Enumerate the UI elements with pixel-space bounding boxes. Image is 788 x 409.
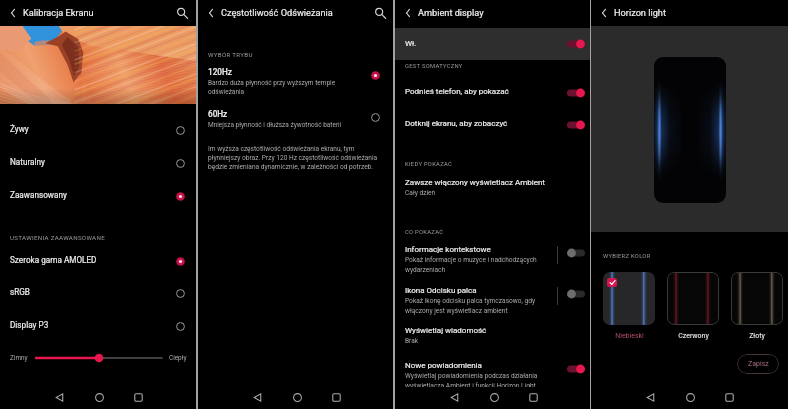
button[interactable]: Wyświetlaj wiadomość [395, 326, 590, 348]
staticText: Bardzo duża płynność przy wyższym tempie… [208, 79, 338, 96]
staticText: Szeroka gama AMOLED [10, 255, 97, 265]
staticText: GEST SOMATYCZNY [405, 63, 463, 70]
staticText: Podnieś telefon, aby pokazać [405, 87, 509, 96]
staticText: Czerwony [678, 332, 709, 340]
button[interactable]: 60Hz [198, 106, 393, 134]
staticText: 60Hz [208, 109, 228, 119]
staticText: Zapisz [748, 360, 769, 368]
button[interactable]: Back [7, 7, 19, 19]
staticText: Informacje kontekstowe [405, 245, 491, 254]
button[interactable]: Back [598, 7, 610, 19]
button[interactable]: Home [487, 390, 501, 404]
staticText: Pokaż informacje o muzyce i nadchodzącyc… [405, 256, 544, 274]
staticText: Cały dzień [405, 189, 436, 197]
staticText: Wyświetlaj wiadomość [405, 326, 487, 335]
button[interactable]: Back [52, 390, 66, 404]
staticText: WYBIERZ KOLOR [603, 253, 651, 260]
staticText: Nowe powiadomienia [405, 361, 482, 370]
button[interactable]: Niebieski [603, 272, 655, 344]
button[interactable]: Recents [722, 390, 736, 404]
button[interactable]: Czerwony [667, 272, 719, 344]
staticText: USTAWIENIA ZAAWANSOWANE [10, 234, 105, 241]
button[interactable]: 120Hz [198, 64, 393, 102]
staticText: Zawsze włączony wyświetlacz Ambient [405, 178, 545, 187]
staticText: Częstotliwość Odświeżania [221, 7, 333, 18]
staticText: Ikona Odcisku palca [405, 286, 477, 295]
button[interactable]: Home [683, 390, 697, 404]
button[interactable]: Back [643, 390, 657, 404]
button[interactable]: Podnieś telefon, aby pokazać [395, 87, 590, 107]
button[interactable]: Wł. [395, 28, 590, 60]
staticText: 120Hz [208, 67, 232, 77]
staticText: Brak [405, 337, 419, 345]
staticText: Wyświetlaj powiadomienia podczas działan… [405, 372, 544, 390]
button[interactable]: Recents [329, 390, 343, 404]
button[interactable]: Dotknij ekranu, aby zobaczyć [395, 119, 590, 139]
staticText: CO POKAZAĆ [405, 229, 444, 236]
button[interactable]: Back [205, 7, 217, 19]
button[interactable]: Home [92, 390, 106, 404]
staticText: WYBÓR TRYBU [208, 51, 253, 58]
staticText: Wł. [405, 39, 417, 48]
staticText: Pokaż ikonę odcisku palca tymczasowo, gd… [405, 297, 544, 315]
button[interactable]: sRGB [0, 277, 196, 309]
staticText: Ambient display [418, 7, 484, 18]
button[interactable]: Zaawansowany [0, 180, 196, 212]
staticText: Horizon light [614, 7, 666, 18]
button[interactable]: Recents [131, 390, 145, 404]
button[interactable]: Zapisz [737, 354, 779, 374]
staticText: Display P3 [10, 320, 49, 330]
staticText: Naturalny [10, 157, 45, 167]
staticText: Niebieski [615, 332, 644, 340]
staticText: Złoty [749, 332, 765, 340]
button[interactable]: Back [447, 390, 461, 404]
button[interactable]: Informacje kontekstowe [395, 245, 590, 277]
staticText: Im wyższa częstotliwość odświeżania ekra… [208, 145, 380, 171]
staticText: Żywy [10, 124, 29, 134]
staticText: Zimny [10, 354, 28, 362]
staticText: Ciepły [169, 354, 187, 362]
button[interactable]: Nowe powiadomienia [395, 361, 590, 393]
button[interactable]: Zawsze włączony wyświetlacz Ambient [395, 178, 590, 200]
button[interactable]: Szeroka gama AMOLED [0, 245, 196, 277]
staticText: Dotknij ekranu, aby zobaczyć [405, 119, 508, 128]
button[interactable]: Żywy [0, 114, 196, 146]
button[interactable]: Back [402, 7, 414, 19]
button[interactable]: Złoty [731, 272, 783, 344]
staticText: Kalibracja Ekranu [23, 7, 94, 18]
staticText: sRGB [10, 287, 30, 297]
button[interactable]: Back [250, 390, 264, 404]
button[interactable]: Ikona Odcisku palca [395, 286, 590, 318]
staticText: Zaawansowany [10, 190, 67, 200]
button[interactable]: Naturalny [0, 147, 196, 179]
button[interactable]: Display P3 [0, 310, 196, 342]
button[interactable]: Home [290, 390, 304, 404]
button[interactable]: Search [373, 6, 387, 20]
button[interactable]: Recents [526, 390, 540, 404]
staticText: Mniejsza płynność i dłuższa żywotność ba… [208, 121, 388, 129]
button[interactable]: Search [175, 6, 189, 20]
staticText: KIEDY POKAZAĆ [405, 161, 453, 168]
button[interactable]: Zimny [0, 348, 196, 368]
